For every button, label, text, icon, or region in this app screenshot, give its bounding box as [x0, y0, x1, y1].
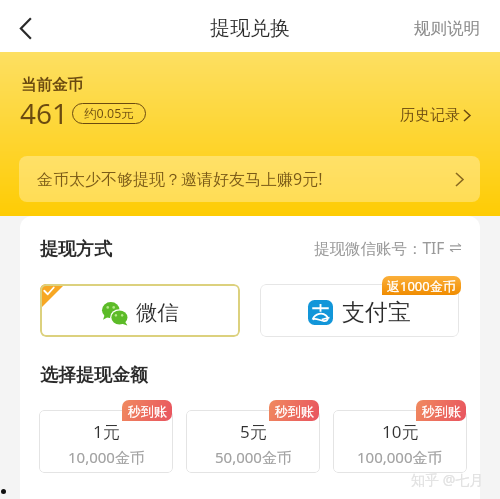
- staticText: 微信: [136, 299, 179, 326]
- button[interactable]: 规则说明: [400, 6, 500, 51]
- staticText: 历史记录: [400, 106, 460, 125]
- staticText: 10元: [382, 420, 419, 443]
- staticText: 1元: [93, 420, 120, 443]
- staticText: 秒到账: [422, 403, 461, 419]
- staticText: 10,000金币: [68, 447, 145, 467]
- button[interactable]: 历史记录: [396, 102, 474, 129]
- staticText: 选择提现金额: [40, 364, 148, 387]
- button[interactable]: 支付宝: [260, 284, 459, 337]
- staticText: 金币太少不够提现？邀请好友马上赚9元!: [37, 168, 323, 190]
- button[interactable]: 5元: [186, 410, 320, 473]
- staticText: 5元: [240, 420, 267, 443]
- button[interactable]: Back: [2, 5, 48, 51]
- staticText: 约0.05元: [84, 105, 134, 122]
- staticText: 提现微信账号：TIF: [314, 237, 445, 258]
- staticText: 秒到账: [275, 403, 314, 419]
- staticText: 知乎 @七月: [411, 470, 484, 489]
- button[interactable]: 金币太少不够提现？邀请好友马上赚9元!: [19, 156, 480, 202]
- staticText: 提现方式: [40, 238, 112, 261]
- staticText: 100,000金币: [357, 447, 443, 467]
- staticText: 支付宝: [342, 298, 411, 327]
- staticText: 规则说明: [414, 18, 480, 39]
- button[interactable]: 1元: [39, 410, 173, 473]
- staticText: 返1000金币: [387, 277, 456, 295]
- staticText: 秒到账: [128, 403, 167, 419]
- staticText: 461: [20, 94, 69, 132]
- staticText: 提现兑换: [210, 16, 290, 41]
- button[interactable]: 10元: [333, 410, 467, 473]
- button[interactable]: 提现微信账号：TIF: [296, 229, 479, 266]
- staticText: 50,000金币: [215, 447, 292, 467]
- button[interactable]: 微信: [40, 284, 240, 337]
- staticText: 当前金币: [21, 75, 83, 95]
